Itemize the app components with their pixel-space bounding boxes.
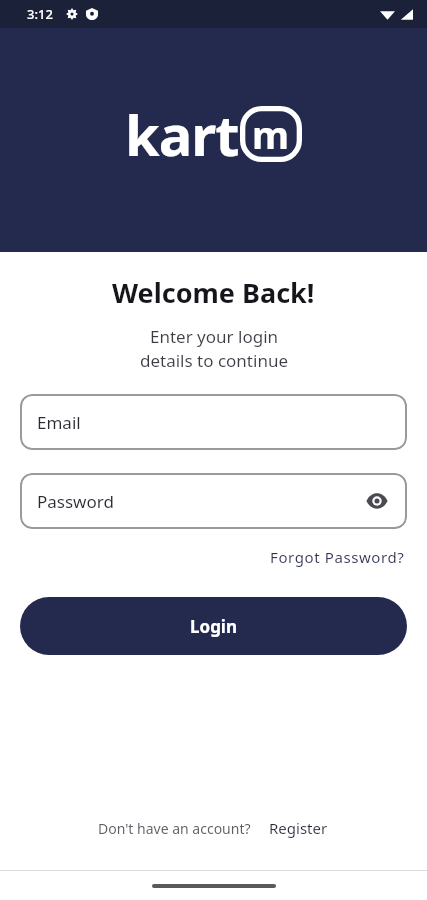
- staticText: Welcome Back!: [112, 274, 315, 311]
- button[interactable]: Email: [20, 394, 407, 450]
- staticText: Register: [269, 818, 328, 838]
- button[interactable]: Show password: [359, 483, 395, 519]
- button[interactable]: Forgot Password?: [268, 543, 407, 571]
- staticText: Don't have an account?: [98, 819, 251, 838]
- staticText: Password: [37, 490, 114, 513]
- staticText: Forgot Password?: [270, 547, 405, 567]
- staticText: Email: [37, 411, 81, 434]
- staticText: 3:12: [27, 5, 53, 23]
- staticText: Enter your login details to continue: [140, 325, 288, 372]
- staticText: kart: [125, 96, 239, 172]
- staticText: Login: [190, 615, 238, 638]
- button[interactable]: Register: [267, 814, 330, 842]
- staticText: m: [252, 108, 290, 160]
- button[interactable]: Login: [20, 597, 407, 655]
- button[interactable]: Password: [20, 473, 407, 529]
